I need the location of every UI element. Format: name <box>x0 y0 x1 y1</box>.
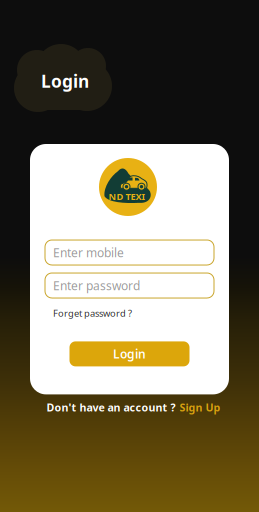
staticText: Enter mobile <box>53 244 124 260</box>
staticText: Don't have an account ? <box>46 400 175 415</box>
button[interactable]: Don't have an account ? <box>42 400 216 415</box>
staticText: Forget password ? <box>53 307 132 319</box>
staticText: ND TEXI <box>108 190 145 203</box>
staticText: Login <box>113 346 146 362</box>
staticText: Enter password <box>53 277 140 293</box>
staticText: Sign Up <box>179 400 220 415</box>
button[interactable]: Forget password ? <box>45 307 214 319</box>
button[interactable]: Login <box>69 341 189 366</box>
staticText: Login <box>41 69 89 92</box>
